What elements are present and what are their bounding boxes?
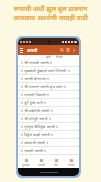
staticText: ॥ दुर्गे दुर्घट भारी ॥ xyxy=(21,100,47,105)
button[interactable]: ॥ हनुमानाची आरती ॥ xyxy=(18,155,79,163)
staticText: ॥ श्री लक्ष्मीची आरती ॥ xyxy=(21,108,53,113)
button[interactable]: More options xyxy=(72,48,76,52)
staticText: शोध xyxy=(54,163,59,167)
staticText: ॥ हनुमानाची आरती ॥ xyxy=(21,156,51,161)
button[interactable]: ॥ युगेयुगे श्रीविठ्ठल आरती ॥ xyxy=(18,123,79,131)
button[interactable]: Bookmark xyxy=(66,48,70,52)
staticText: आडकाठ अवशेषी जावही वाडी xyxy=(0,13,101,22)
button[interactable]: ॥ श्री गणपती आरती ॥ xyxy=(18,59,79,67)
button[interactable]: मुख्यपृष्ठ xyxy=(18,157,34,168)
button[interactable]: ॥ गणपती विसर्जन ॥ xyxy=(18,91,79,99)
button[interactable]: विभाग xyxy=(56,55,64,59)
staticText: अधिक xyxy=(68,163,75,167)
staticText: ॥ विठ्ठल माझी आरती ॥ xyxy=(21,132,54,137)
staticText: रूपाची अर्धी झुल बुल डाक्यान xyxy=(0,4,101,13)
staticText: ॥ गणपती विसर्जन ॥ xyxy=(21,92,50,97)
staticText: मुख्यपृष्ठ xyxy=(22,163,30,167)
button[interactable]: ॥ श्री गजानन आरती शुभ दर्शन ॥ xyxy=(18,83,79,91)
button[interactable]: Menu xyxy=(20,48,23,53)
staticText: ॥ श्री गजानन आरती शुभ दर्शन ॥ xyxy=(21,84,66,89)
button[interactable]: ॥ दुर्गे दुर्घट भारी ॥ xyxy=(18,99,79,107)
button[interactable]: ॥ विठ्ठल माझी आरती ॥ xyxy=(18,131,79,139)
button[interactable]: ॥ श्री लक्ष्मीची आरती ॥ xyxy=(18,107,79,115)
button[interactable]: Search xyxy=(60,48,64,52)
button[interactable]: सूची xyxy=(46,55,51,59)
button[interactable]: ॥ रामाची आरती ॥ xyxy=(18,147,79,155)
staticText: आरती xyxy=(27,47,38,53)
button[interactable]: ॥ सुखकर्ता दुखहर्ता वार्ता विघ्नाची ॥ xyxy=(18,67,79,75)
button[interactable]: अधिक xyxy=(64,157,79,168)
button[interactable]: ॥ श्री दत्तगुरु आरती ॥ xyxy=(18,115,79,123)
staticText: ॥ आरती ज्ञानराजा ॥ xyxy=(21,76,49,81)
staticText: ॥ युगेयुगे श्रीविठ्ठल आरती ॥ xyxy=(21,124,59,129)
button[interactable]: शोध xyxy=(49,157,64,168)
staticText: ॥ सुखकर्ता दुखहर्ता वार्ता विघ्नाची ॥ xyxy=(21,68,70,73)
button[interactable]: आवडते xyxy=(34,157,49,168)
button[interactable]: ॥ आरती ज्ञानराजा ॥ xyxy=(18,75,79,83)
staticText: ॥ श्री गणपती आरती ॥ xyxy=(21,60,52,65)
staticText: आवडते xyxy=(38,163,45,167)
button[interactable]: ॥ शंकराची आरती ॥ xyxy=(18,139,79,147)
staticText: ॥ रामाची आरती ॥ xyxy=(21,148,47,153)
staticText: ॥ शंकराची आरती ॥ xyxy=(21,140,49,145)
staticText: ॥ श्री दत्तगुरु आरती ॥ xyxy=(21,116,51,121)
